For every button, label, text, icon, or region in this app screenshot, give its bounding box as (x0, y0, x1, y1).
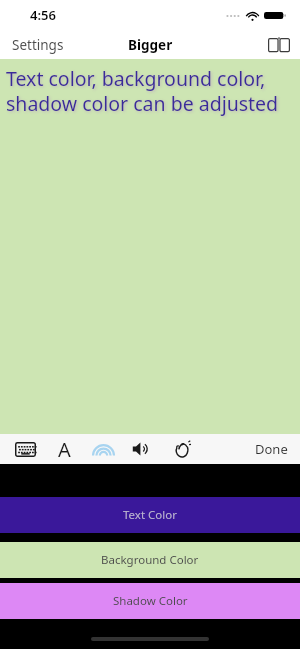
staticText: Bigger (128, 36, 173, 54)
button[interactable]: Done (243, 436, 300, 462)
button[interactable]: Speak (129, 436, 155, 462)
staticText: Text color, background color, shadow col… (6, 65, 294, 116)
staticText: Done (255, 440, 288, 458)
button[interactable]: Open book (268, 36, 300, 53)
button[interactable]: Settings (0, 32, 76, 58)
staticText: Background Color (101, 552, 199, 568)
button[interactable]: Background Color (0, 542, 300, 578)
staticText: A (58, 436, 71, 462)
staticText: Text Color (123, 507, 177, 523)
button[interactable]: Keyboard (12, 436, 38, 462)
button[interactable]: Font size (51, 436, 77, 462)
staticText: 4:56 (30, 6, 56, 24)
button[interactable]: Text Color (0, 497, 300, 533)
button[interactable]: Shadow Color (0, 583, 300, 619)
staticText: Settings (12, 36, 64, 54)
button[interactable]: Colors (90, 436, 116, 462)
button[interactable]: Touch (168, 436, 194, 462)
staticText: Shadow Color (113, 593, 188, 609)
